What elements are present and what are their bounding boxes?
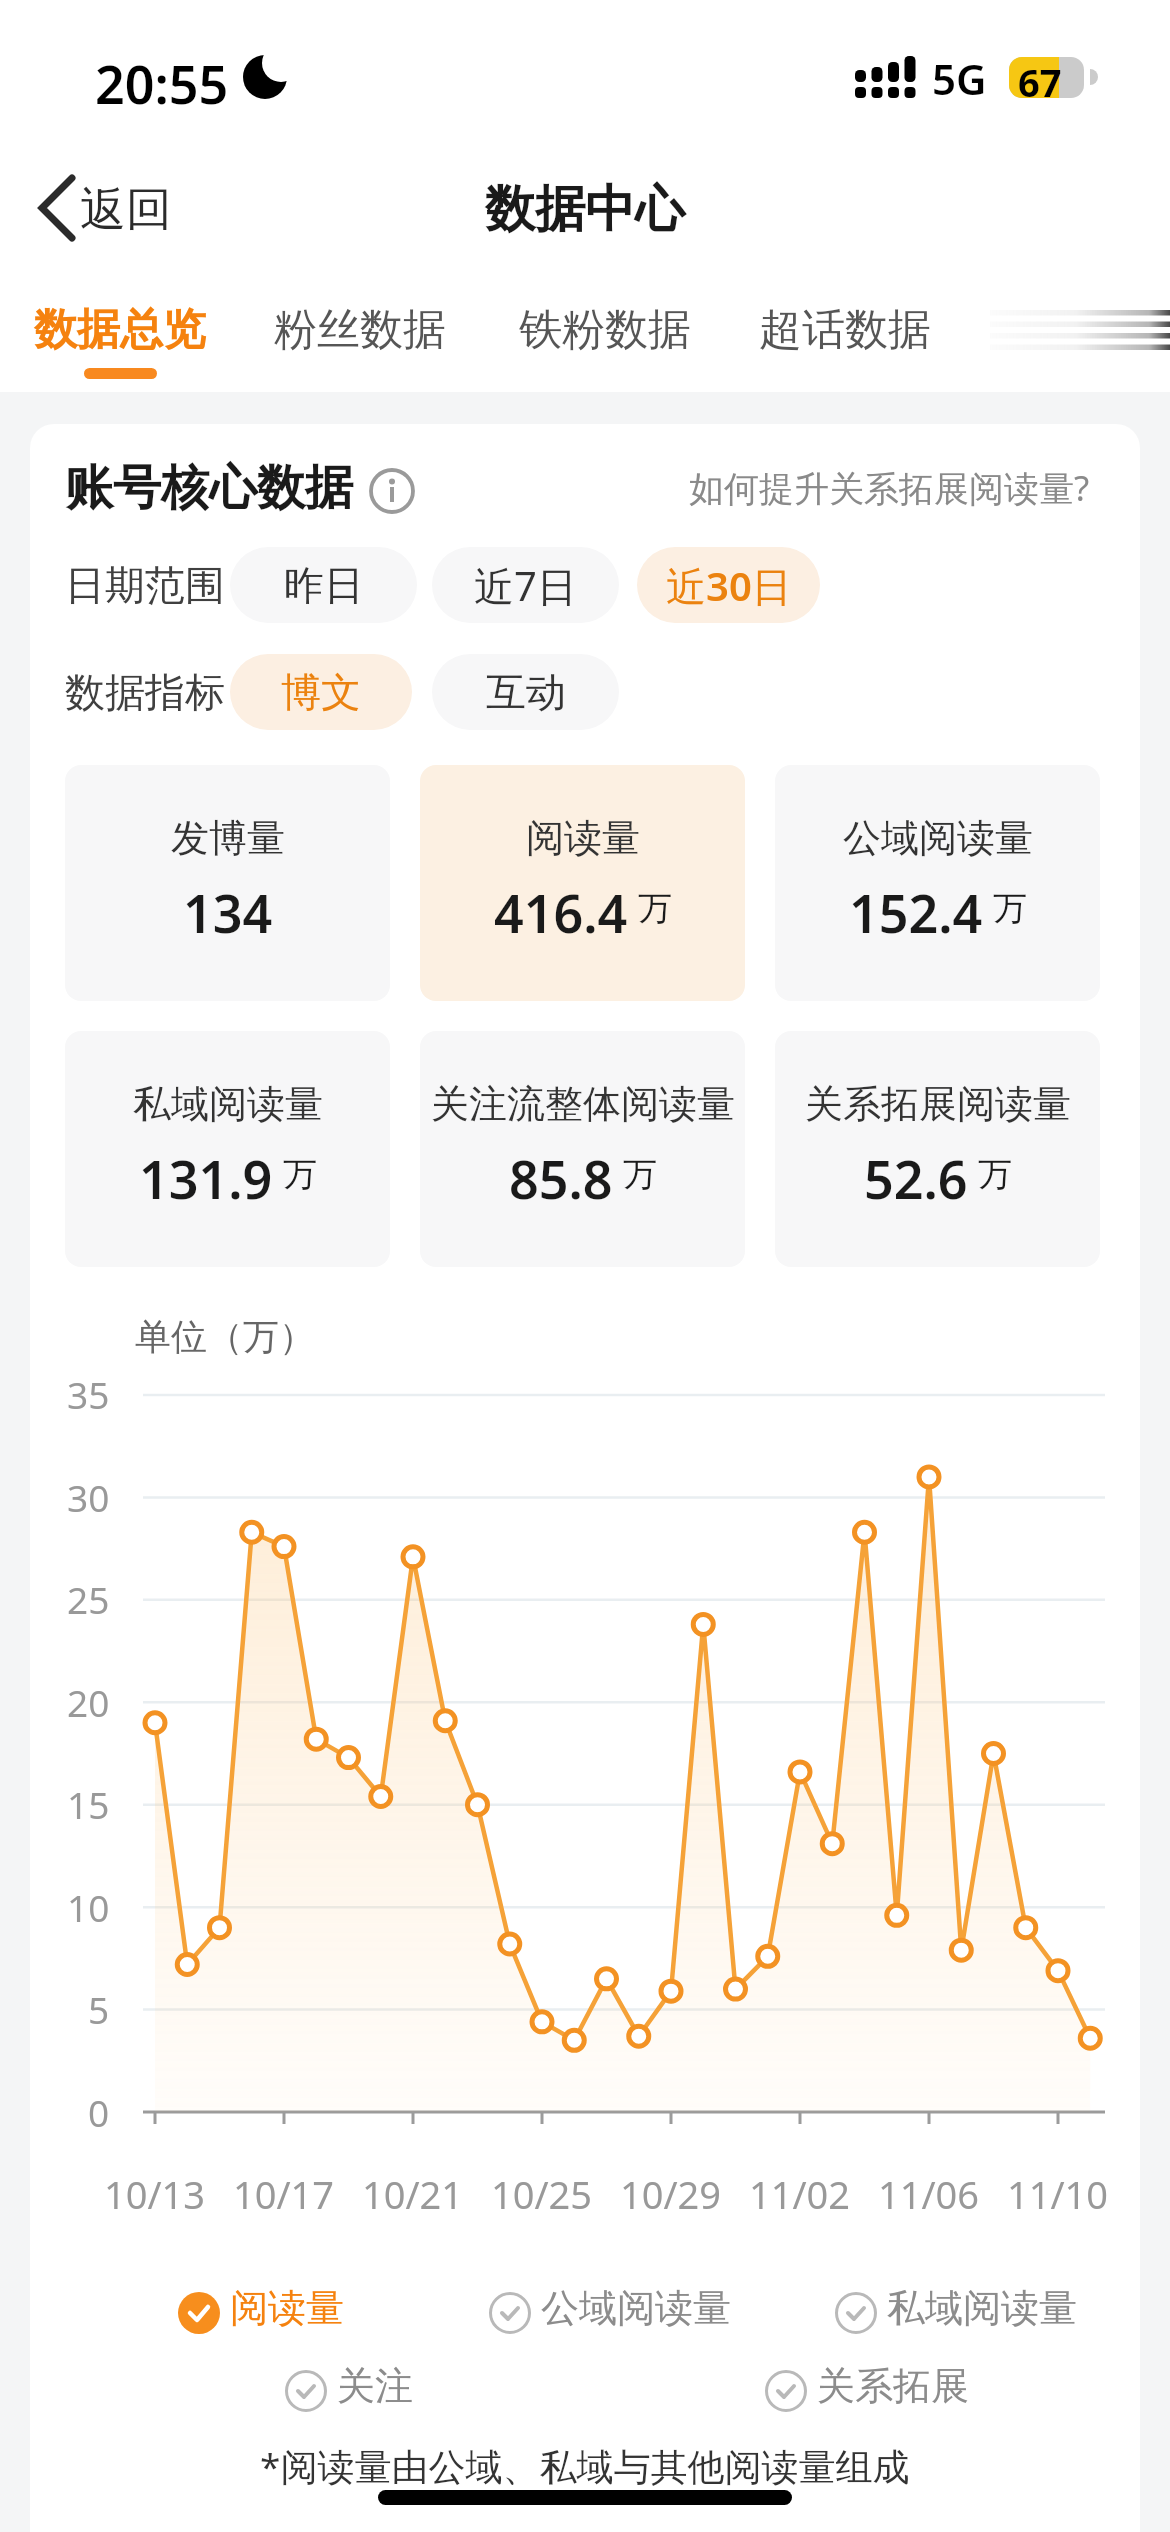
staticText: 万 xyxy=(993,887,1027,930)
staticText: 超话数据 xyxy=(759,303,931,357)
staticText: 152.4 xyxy=(849,877,983,939)
staticText: 25 xyxy=(67,1574,110,1624)
staticText: 20:55 xyxy=(95,48,229,108)
staticText: 10/21 xyxy=(362,2168,464,2214)
staticText: 10/17 xyxy=(233,2168,335,2214)
staticText: 日期范围 xyxy=(65,560,225,610)
staticText: 公域阅读量 xyxy=(541,2284,731,2332)
staticText: 15 xyxy=(67,1779,110,1829)
button[interactable]: 近7日 xyxy=(432,547,619,623)
staticText: 关注流整体阅读量 xyxy=(431,1080,735,1128)
staticText: 账号核心数据 xyxy=(65,458,353,518)
staticText: 私域阅读量 xyxy=(133,1080,323,1128)
staticText: 关注 xyxy=(337,2362,413,2410)
staticText: 阅读量 xyxy=(526,814,640,862)
staticText: 10/25 xyxy=(491,2168,593,2214)
button[interactable]: 阅读量 xyxy=(176,2280,416,2336)
staticText: 10/13 xyxy=(104,2168,206,2214)
staticText: 85.8 xyxy=(509,1143,613,1205)
staticText: 万 xyxy=(283,1153,317,1196)
staticText: 数据中心 xyxy=(485,178,685,241)
staticText: 公域阅读量 xyxy=(843,814,1033,862)
staticText: 30 xyxy=(67,1472,110,1522)
staticText: 131.9 xyxy=(139,1143,273,1205)
button[interactable]: 如何提升关系拓展阅读量? xyxy=(650,462,1090,514)
button[interactable]: 数据总览 xyxy=(33,300,207,360)
staticText: 11/10 xyxy=(1007,2168,1109,2214)
button[interactable]: 返回 xyxy=(30,170,290,250)
button[interactable]: 发博量 xyxy=(65,765,390,1001)
staticText: *阅读量由公域、私域与其他阅读量组成 xyxy=(260,2440,910,2488)
staticText: 发博量 xyxy=(171,814,285,862)
button[interactable]: 博文 xyxy=(230,654,412,730)
staticText: 35 xyxy=(67,1369,110,1419)
staticText: 万 xyxy=(623,1153,657,1196)
staticText: 416.4 xyxy=(494,877,628,939)
staticText: 52.6 xyxy=(864,1143,968,1205)
staticText: 20 xyxy=(67,1677,110,1727)
button[interactable]: 关系拓展 xyxy=(763,2358,1043,2414)
staticText: 粉丝数据 xyxy=(274,303,446,357)
button[interactable]: 私域阅读量 xyxy=(833,2280,1133,2336)
staticText: 关系拓展 xyxy=(817,2362,969,2410)
staticText: 关系拓展阅读量 xyxy=(805,1080,1071,1128)
button[interactable]: 私域阅读量 xyxy=(65,1031,390,1267)
button[interactable]: 关注流整体阅读量 xyxy=(420,1031,745,1267)
staticText: 11/06 xyxy=(878,2168,980,2214)
staticText: 单位（万） xyxy=(135,1314,315,1359)
button[interactable]: 超话数据 xyxy=(755,300,935,360)
staticText: 阅读量 xyxy=(230,2284,344,2332)
staticText: 互动 xyxy=(486,667,566,717)
staticText: 11/02 xyxy=(749,2168,851,2214)
button[interactable]: 近30日 xyxy=(637,547,820,623)
staticText: 134 xyxy=(183,877,273,939)
staticText: 10 xyxy=(67,1882,110,1932)
staticText: 数据总览 xyxy=(34,303,206,357)
staticText: 0 xyxy=(88,2087,110,2137)
button[interactable]: 阅读量 xyxy=(420,765,745,1001)
staticText: 近7日 xyxy=(474,558,577,613)
staticText: 5G xyxy=(932,50,987,106)
staticText: 数据指标 xyxy=(65,667,225,717)
staticText: 博文 xyxy=(281,667,361,717)
staticText: 私域阅读量 xyxy=(887,2284,1077,2332)
staticText: 10/29 xyxy=(620,2168,722,2214)
button[interactable]: 公域阅读量 xyxy=(775,765,1100,1001)
button[interactable]: 公域阅读量 xyxy=(487,2280,787,2336)
staticText: 万 xyxy=(978,1153,1012,1196)
staticText: 如何提升关系拓展阅读量? xyxy=(689,464,1090,512)
button[interactable]: 铁粉数据 xyxy=(515,300,695,360)
staticText: 67 xyxy=(1018,56,1062,98)
staticText: 昨日 xyxy=(284,560,364,610)
button[interactable]: 昨日 xyxy=(230,547,417,623)
button[interactable]: 粉丝数据 xyxy=(270,300,450,360)
staticText: 万 xyxy=(638,887,672,930)
button[interactable]: 关注 xyxy=(283,2358,483,2414)
button[interactable]: 关系拓展阅读量 xyxy=(775,1031,1100,1267)
staticText: 近30日 xyxy=(666,558,792,613)
staticText: 返回 xyxy=(80,181,172,239)
button[interactable]: 互动 xyxy=(432,654,619,730)
staticText: 铁粉数据 xyxy=(519,303,691,357)
staticText: 5 xyxy=(88,1984,110,2034)
